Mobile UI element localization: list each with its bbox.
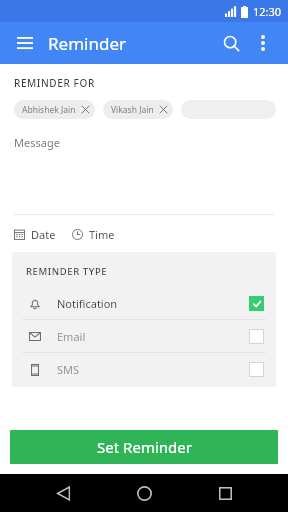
staticText: Reminder: [48, 32, 127, 55]
staticText: REMINDER FOR: [14, 76, 95, 90]
button[interactable]: Home: [126, 475, 162, 511]
button[interactable]: Recent apps: [207, 475, 243, 511]
button[interactable]: Date: [14, 227, 60, 242]
button[interactable]: Abhishek Jain: [14, 100, 95, 119]
staticText: REMINDER TYPE: [26, 265, 108, 278]
button[interactable]: Time: [72, 227, 119, 242]
staticText: Notification: [57, 296, 118, 311]
staticText: Set Reminder: [97, 437, 192, 457]
button[interactable]: Email: [12, 320, 276, 352]
staticText: Vikash Jain: [111, 104, 154, 116]
staticText: Message: [14, 135, 60, 150]
staticText: SMS: [57, 362, 80, 377]
staticText: Date: [31, 227, 56, 242]
button[interactable]: Open navigation menu: [12, 30, 38, 56]
button[interactable]: Search: [216, 28, 246, 58]
staticText: Time: [89, 227, 115, 242]
button[interactable]: Add recipient: [181, 100, 276, 119]
staticText: 12:30: [253, 4, 282, 19]
button[interactable]: More options: [250, 30, 276, 56]
button[interactable]: Set Reminder: [10, 430, 278, 464]
button[interactable]: Notification: [12, 287, 276, 319]
staticText: Email: [57, 329, 86, 344]
button[interactable]: SMS: [12, 353, 276, 385]
staticText: Abhishek Jain: [22, 104, 76, 116]
button[interactable]: Back: [45, 475, 81, 511]
button[interactable]: Vikash Jain: [103, 100, 173, 119]
